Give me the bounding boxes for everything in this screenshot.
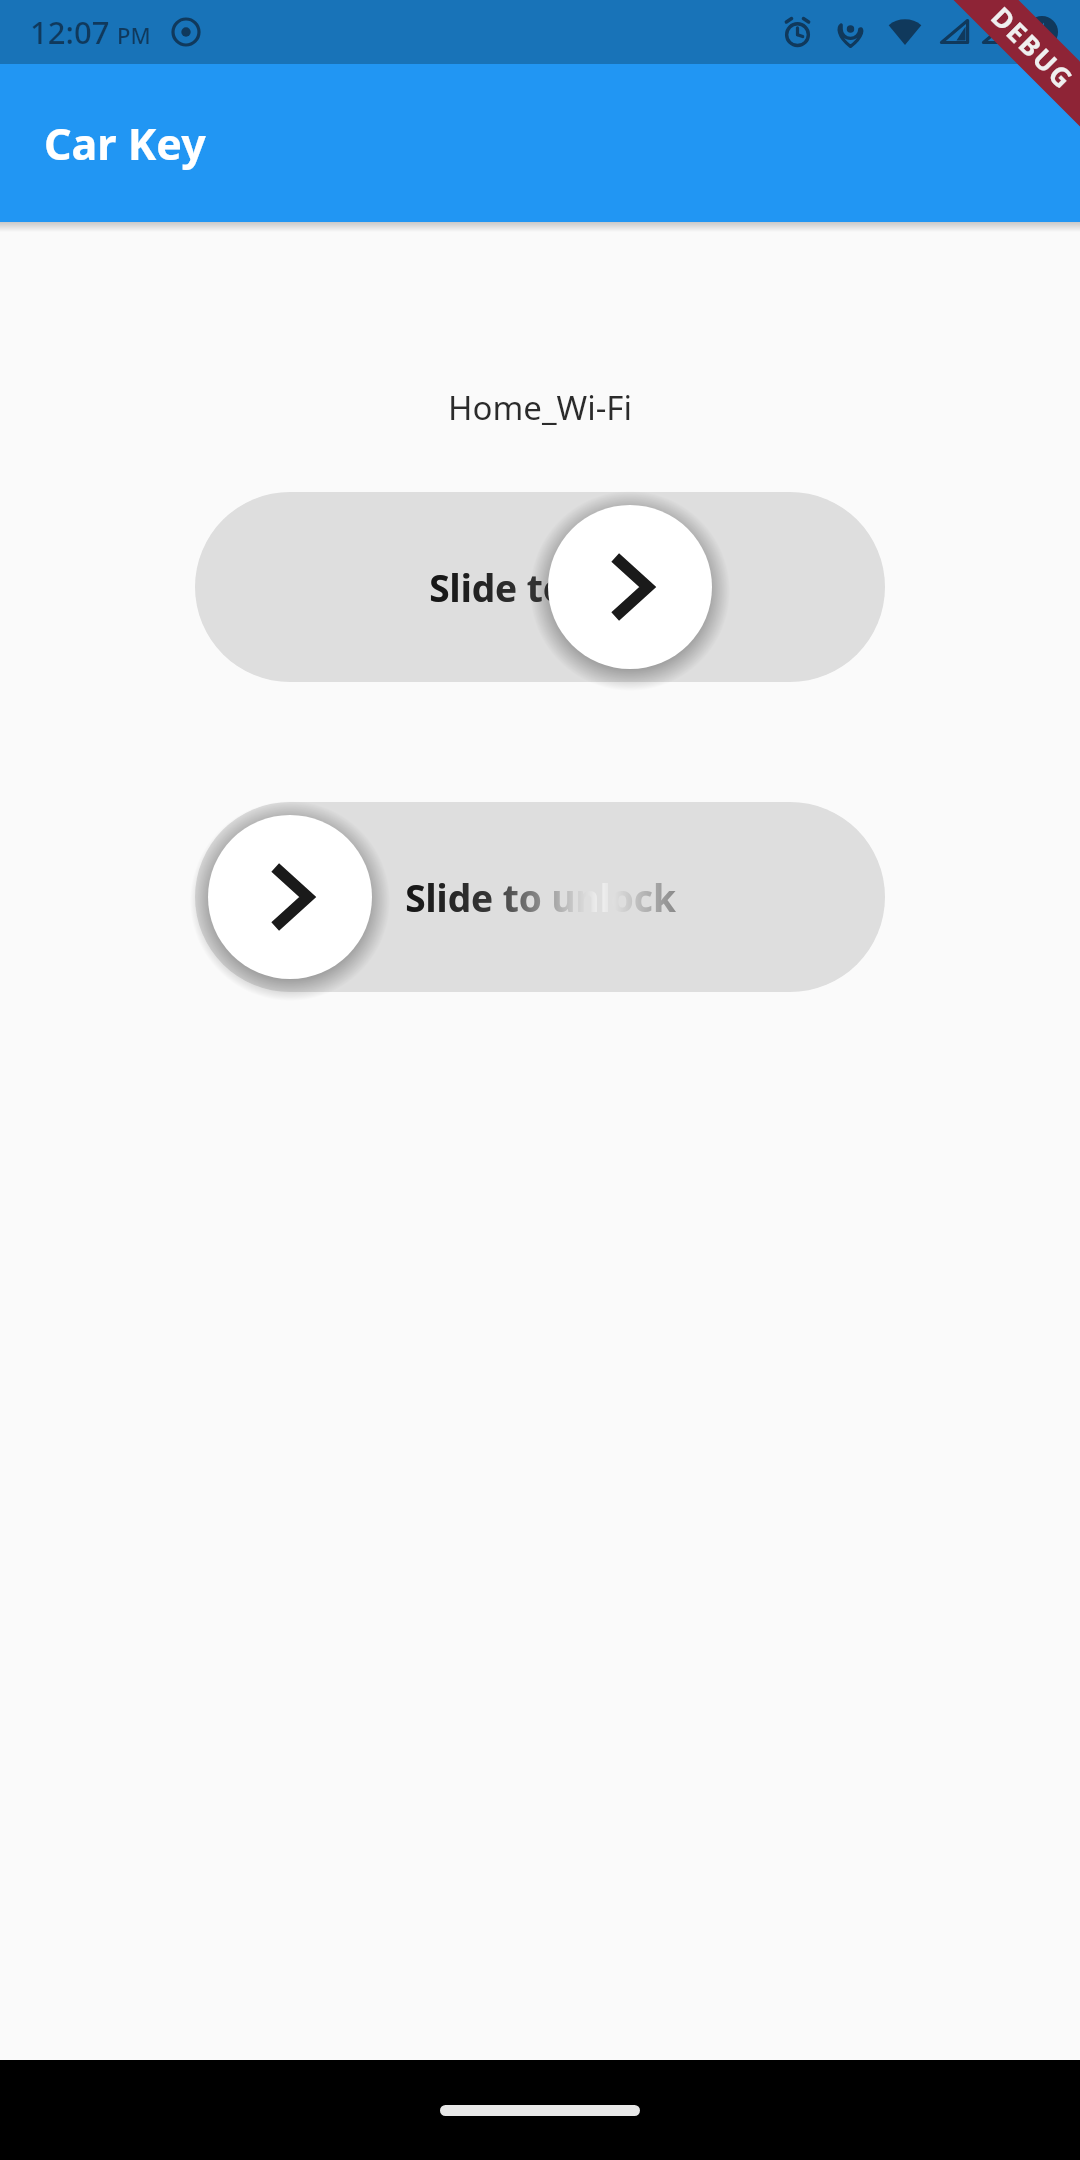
staticText: PM (117, 20, 151, 50)
staticText: Home_Wi-Fi (448, 385, 633, 430)
staticText: Slide to unlock (405, 872, 676, 922)
button[interactable]: Slide to unlock (208, 815, 372, 979)
staticText: Car Key (44, 114, 206, 173)
button[interactable]: Home gesture bar (440, 2105, 640, 2116)
button[interactable]: Slide to lock (195, 492, 885, 682)
staticText: Slide to lock (429, 562, 652, 612)
staticText: DEBUG (983, 0, 1080, 97)
button[interactable]: Slide to unlock (195, 802, 885, 992)
button[interactable]: Slide to lock (548, 505, 712, 669)
staticText: 12:07 (30, 11, 110, 53)
